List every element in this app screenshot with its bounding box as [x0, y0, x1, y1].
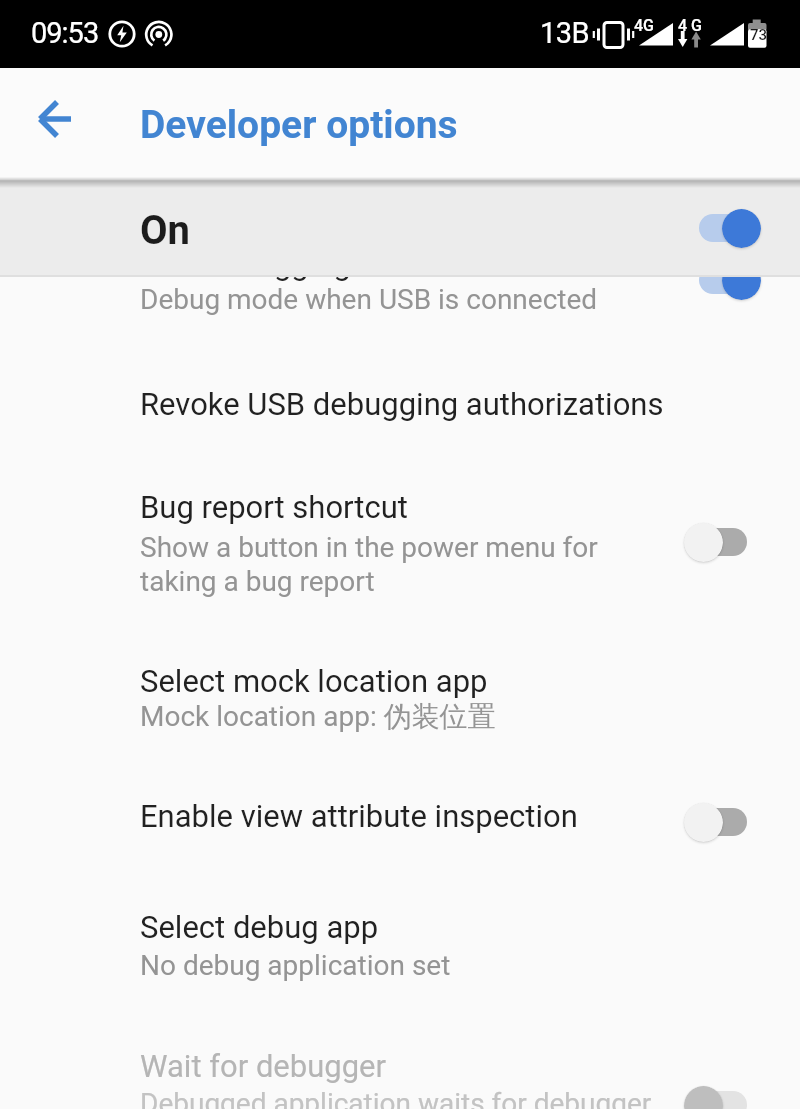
button[interactable]: [684, 522, 762, 562]
staticText: Bug report shortcut: [140, 489, 408, 525]
staticText: Revoke USB debugging authorizations: [140, 386, 664, 422]
staticText: Mock location app: 伪装位置: [140, 699, 496, 734]
button[interactable]: Revoke USB debugging authorizations: [0, 354, 800, 460]
staticText: Select mock location app: [140, 663, 488, 699]
button[interactable]: [684, 802, 762, 842]
staticText: 4G: [634, 16, 654, 35]
button[interactable]: USB debugging: [0, 239, 800, 352]
button[interactable]: Select debug app: [0, 880, 800, 1014]
button[interactable]: [684, 1085, 762, 1109]
staticText: 09:53: [31, 16, 99, 50]
staticText: On: [140, 207, 191, 254]
button[interactable]: [684, 260, 762, 300]
button[interactable]: Wait for debugger: [0, 1014, 800, 1109]
staticText: 13B: [540, 16, 590, 50]
button[interactable]: [684, 208, 762, 248]
staticText: Select debug app: [140, 909, 379, 945]
button[interactable]: [24, 88, 86, 150]
button[interactable]: On: [0, 180, 800, 277]
staticText: USB debugging: [140, 246, 351, 282]
staticText: Wait for debugger: [140, 1048, 387, 1084]
staticText: Enable view attribute inspection: [140, 798, 578, 834]
staticText: No debug application set: [140, 949, 451, 982]
staticText: Debugged application waits for debugger: [140, 1087, 652, 1109]
staticText: Developer options: [140, 102, 458, 148]
button[interactable]: Bug report shortcut: [0, 460, 800, 628]
staticText: Debug mode when USB is connected: [140, 283, 598, 316]
button[interactable]: Select mock location app: [0, 628, 800, 768]
staticText: 4 G: [678, 16, 702, 35]
staticText: Show a button in the power menu for taki…: [140, 531, 598, 598]
staticText: 73: [750, 26, 768, 44]
button[interactable]: Enable view attribute inspection: [0, 768, 800, 880]
